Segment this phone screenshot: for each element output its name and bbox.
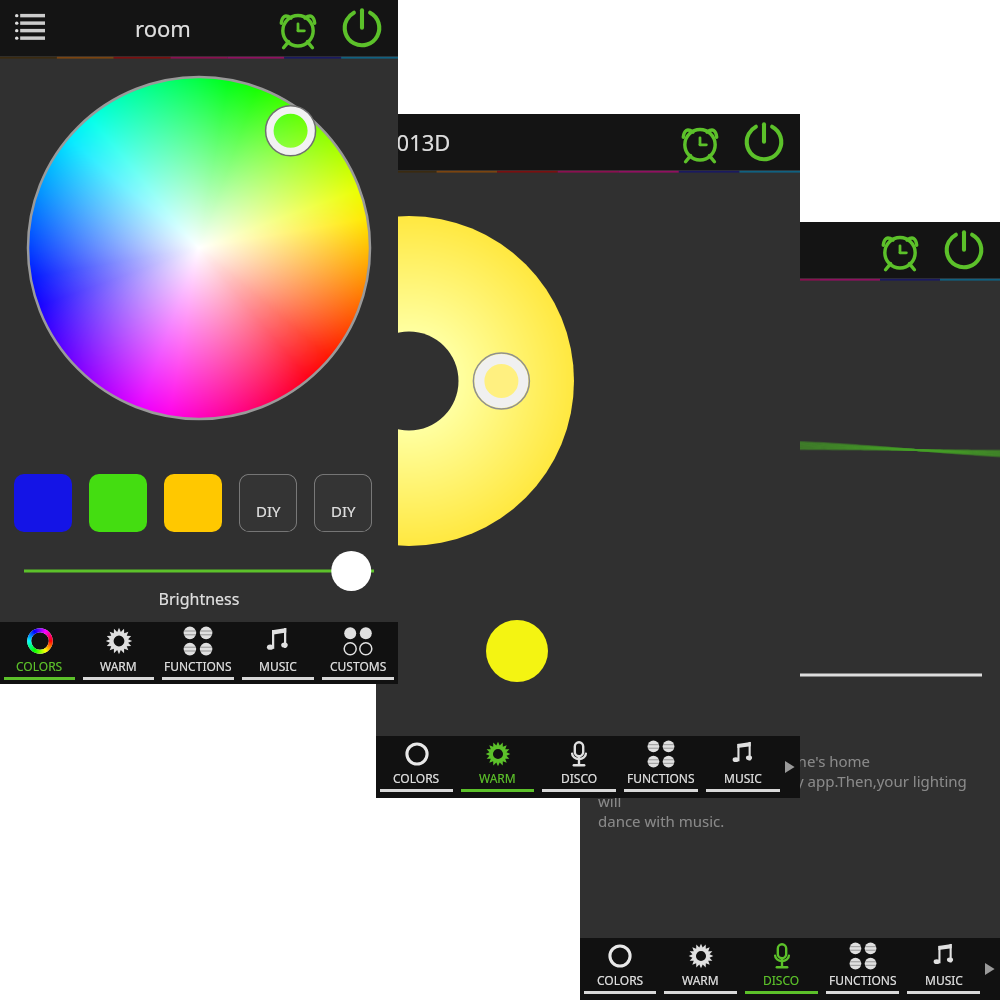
button[interactable]: Warm white wheel bbox=[244, 216, 574, 546]
staticText: WARM bbox=[479, 770, 516, 786]
button[interactable]: Power bbox=[336, 2, 388, 54]
button[interactable]: CUSTOMS bbox=[964, 944, 1000, 1000]
button[interactable]: CUSTOMS bbox=[318, 622, 398, 684]
staticText: MUSIC bbox=[259, 658, 297, 674]
button[interactable] bbox=[24, 554, 374, 588]
button[interactable]: DIY bbox=[239, 474, 297, 532]
button[interactable]: WARM bbox=[79, 622, 158, 684]
staticText: MUSIC bbox=[925, 972, 963, 988]
button[interactable]: MUSIC bbox=[903, 938, 984, 1000]
button[interactable]: COLORS bbox=[820, 944, 856, 1000]
button[interactable]: Current color bbox=[486, 620, 548, 682]
button[interactable]: MUSIC bbox=[702, 736, 784, 798]
staticText: CUSTOMS bbox=[330, 658, 387, 674]
staticText: MUSIC bbox=[724, 770, 762, 786]
button[interactable]: Preset color bbox=[164, 474, 222, 532]
button[interactable]: FUNCTIONS bbox=[822, 938, 903, 1000]
button[interactable]: Timer bbox=[674, 116, 726, 168]
button[interactable]: DISCO bbox=[538, 736, 620, 798]
staticText: FUNCTIONS bbox=[829, 972, 897, 988]
button[interactable]: WARM bbox=[660, 938, 741, 1000]
button[interactable]: MUSIC bbox=[928, 944, 964, 1000]
staticText: Press "home" to back to phone's home scr… bbox=[598, 751, 990, 831]
button[interactable]: DIY bbox=[314, 474, 372, 532]
button[interactable]: WARM bbox=[856, 944, 892, 1000]
button[interactable] bbox=[598, 664, 982, 686]
button[interactable]: Power bbox=[938, 224, 990, 276]
staticText: FUNCTIONS bbox=[627, 770, 695, 786]
button[interactable]: More bbox=[981, 961, 997, 977]
staticText: DIY bbox=[331, 501, 356, 521]
staticText: WARM bbox=[100, 658, 137, 674]
button[interactable]: Preset color bbox=[89, 474, 147, 532]
staticText: COLORS bbox=[16, 658, 63, 674]
button[interactable]: FUNCTIONS bbox=[620, 736, 702, 798]
button[interactable]: Preset color bbox=[14, 474, 72, 532]
button[interactable]: COLORS bbox=[580, 938, 660, 1000]
button[interactable]: MUSIC bbox=[238, 622, 318, 684]
button[interactable]: More bbox=[781, 759, 797, 775]
button[interactable]: M+ bbox=[928, 762, 986, 820]
staticText: COLORS bbox=[597, 972, 644, 988]
staticText: M+ bbox=[943, 778, 972, 804]
button[interactable]: Power bbox=[738, 116, 790, 168]
button[interactable]: WARM bbox=[457, 736, 538, 798]
staticText: 0013D bbox=[384, 127, 451, 157]
button[interactable]: FUNCTIONS bbox=[892, 944, 928, 1000]
staticText: DISCO bbox=[763, 972, 800, 988]
staticText: room bbox=[135, 13, 191, 43]
button[interactable]: Menu bbox=[8, 6, 52, 50]
staticText: Brightness bbox=[0, 588, 398, 610]
staticText: DISCO bbox=[561, 770, 598, 786]
staticText: DIY bbox=[256, 501, 281, 521]
staticText: WARM bbox=[682, 972, 719, 988]
staticText: FUNCTIONS bbox=[164, 658, 232, 674]
button[interactable]: Color wheel bbox=[25, 74, 373, 422]
button[interactable]: DISCO bbox=[741, 938, 822, 1000]
button[interactable]: dual change bbox=[820, 634, 1000, 682]
button[interactable]: FUNCTIONS bbox=[158, 622, 238, 684]
button[interactable]: Timer bbox=[272, 2, 324, 54]
button[interactable]: COLORS bbox=[376, 736, 457, 798]
button[interactable]: COLORS bbox=[0, 622, 79, 684]
staticText: COLORS bbox=[393, 770, 440, 786]
button[interactable]: Timer bbox=[874, 224, 926, 276]
